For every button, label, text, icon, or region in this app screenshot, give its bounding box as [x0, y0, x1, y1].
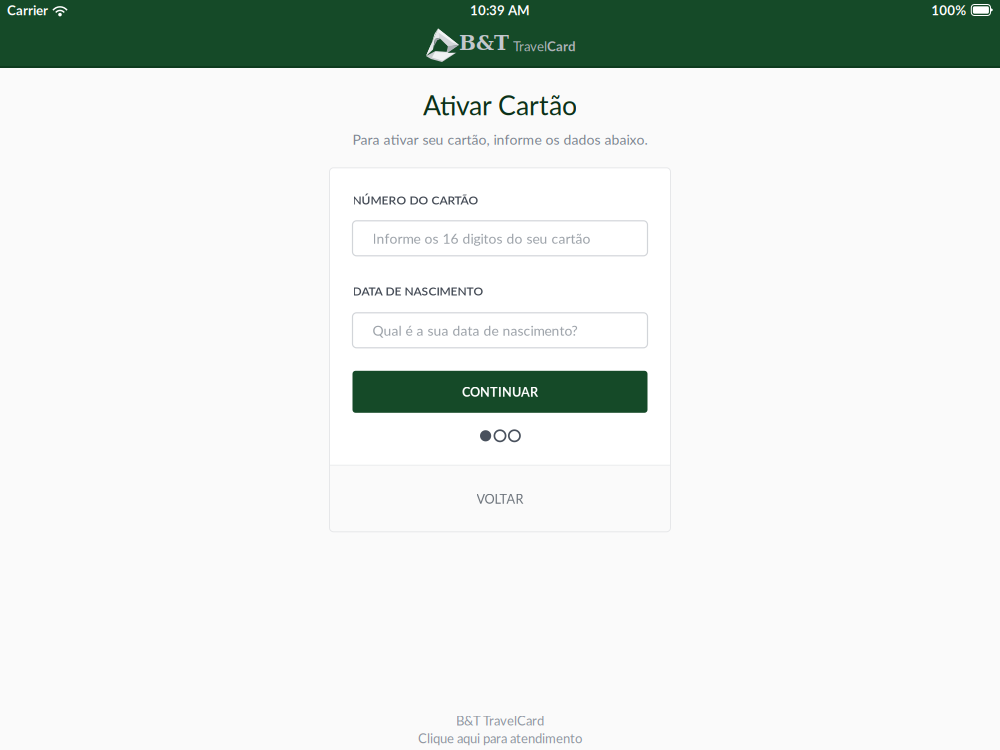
- staticText: 100%: [931, 2, 966, 18]
- staticText: DATA DE NASCIMENTO: [352, 284, 483, 298]
- staticText: Informe os 16 digitos do seu cartão: [372, 230, 590, 247]
- staticText: B&T TravelCard: [456, 713, 544, 728]
- staticText: Qual é a sua data de nascimento?: [372, 322, 577, 339]
- button[interactable]: Clique aqui para atendimento: [418, 730, 582, 746]
- staticText: Para ativar seu cartão, informe os dados…: [352, 131, 647, 148]
- staticText: Ativar Cartão: [423, 89, 577, 121]
- staticText: Card: [547, 38, 576, 54]
- staticText: Clique aqui para atendimento: [418, 730, 582, 746]
- staticText: VOLTAR: [476, 491, 523, 506]
- staticText: 10:39 AM: [470, 2, 530, 18]
- staticText: CONTINUAR: [462, 384, 538, 399]
- staticText: B&T: [459, 31, 509, 55]
- button[interactable]: CONTINUAR: [352, 371, 647, 413]
- staticText: Travel: [513, 38, 547, 54]
- staticText: NÚMERO DO CARTÃO: [352, 193, 478, 207]
- button[interactable]: VOLTAR: [329, 466, 670, 532]
- staticText: Carrier: [7, 2, 48, 18]
